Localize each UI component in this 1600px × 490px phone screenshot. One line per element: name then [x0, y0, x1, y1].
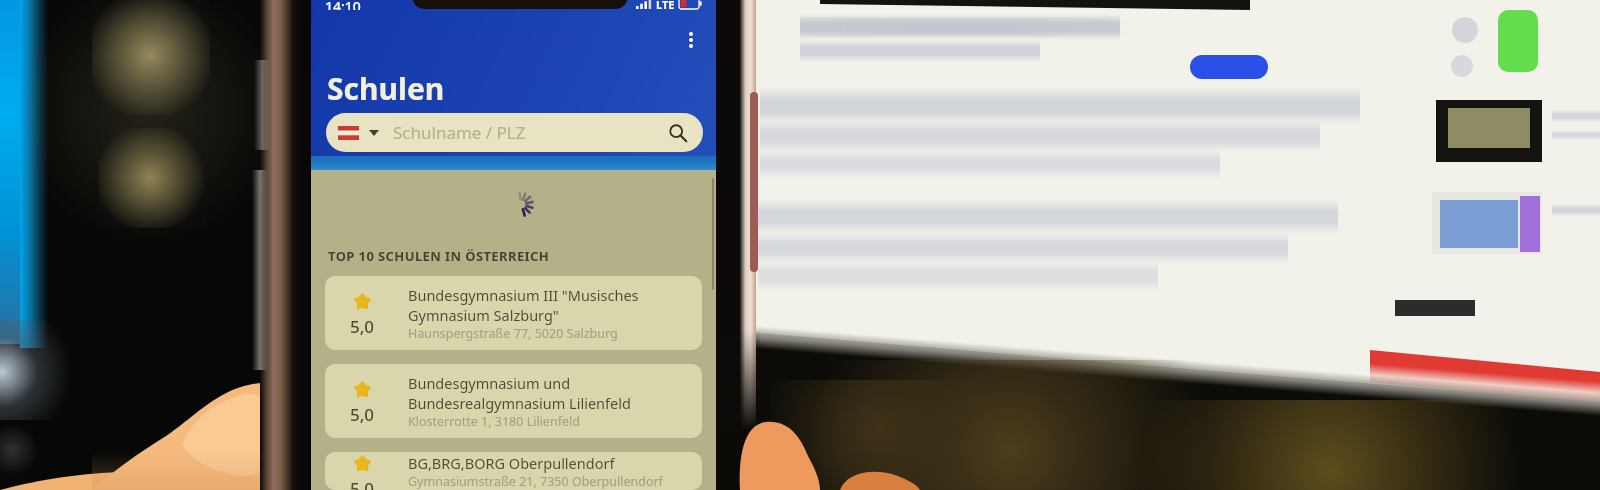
staticText: 5,0	[350, 315, 375, 338]
staticText: BG,BRG,BORG Oberpullendorf	[408, 453, 615, 473]
button[interactable]: Schulname / PLZ	[326, 113, 703, 152]
staticText: Bundesgymnasium III "Musisches Gymnasium…	[408, 285, 639, 325]
staticText: Schulen	[327, 68, 445, 109]
staticText: Schulname / PLZ	[393, 121, 526, 144]
button[interactable]: More options	[675, 24, 707, 56]
button[interactable]: 5,0	[325, 364, 702, 438]
staticText: Bundesgymnasium und Bundesrealgymnasium …	[408, 373, 631, 413]
button[interactable]: 5,0	[325, 276, 702, 350]
staticText: LTE	[656, 0, 675, 10]
staticText: 5,0	[350, 477, 375, 490]
staticText: 14:10	[325, 0, 361, 10]
staticText: 5,0	[350, 403, 375, 426]
staticText: Klosterrotte 1, 3180 Lilienfeld	[408, 413, 580, 430]
staticText: Haunspergstraße 77, 5020 Salzburg	[408, 325, 618, 342]
staticText: TOP 10 SCHULEN IN ÖSTERREICH	[328, 247, 550, 265]
staticText: Gymnasiumstraße 21, 7350 Oberpullendorf	[408, 473, 663, 490]
button[interactable]: 5,0	[325, 452, 702, 490]
